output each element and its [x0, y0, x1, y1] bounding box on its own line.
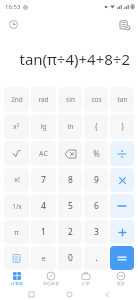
staticText: 2	[68, 226, 73, 238]
button[interactable]: 7	[31, 168, 56, 192]
staticText: 7	[41, 174, 46, 186]
button[interactable]: AC	[31, 141, 56, 166]
button[interactable]: .	[84, 246, 108, 270]
staticText: 计算器	[11, 281, 23, 286]
button[interactable]: rad	[31, 87, 56, 112]
button[interactable]: Home	[62, 288, 76, 300]
button[interactable]: π	[4, 220, 29, 244]
button[interactable]: History	[6, 17, 20, 31]
button[interactable]: 1/x	[4, 194, 29, 218]
button[interactable]: 4	[31, 194, 56, 218]
staticText: x2	[13, 122, 20, 132]
staticText: AC	[39, 149, 48, 159]
button[interactable]: e	[31, 246, 56, 270]
staticText: )	[121, 121, 124, 132]
button[interactable]: Recents	[24, 288, 38, 300]
button[interactable]: 3	[84, 220, 108, 244]
button[interactable]: 汇率	[68, 270, 103, 288]
staticText: x!	[14, 175, 20, 185]
button[interactable]: 9	[84, 168, 108, 192]
staticText: 2nd	[11, 95, 23, 104]
staticText: lg	[40, 122, 47, 132]
staticText: tan(π÷4)+4+8÷2	[19, 49, 130, 69]
button[interactable]: Divide	[110, 141, 134, 166]
staticText: tan	[117, 95, 128, 104]
button[interactable]: Backspace	[58, 141, 82, 166]
button[interactable]: 6	[84, 194, 108, 218]
staticText: 16:53	[5, 3, 21, 11]
staticText: e	[41, 253, 46, 263]
staticText: sin	[66, 95, 75, 104]
staticText: (	[95, 121, 98, 132]
staticText: 更多	[117, 281, 125, 286]
staticText: π	[14, 227, 19, 237]
staticText: cos	[91, 95, 102, 104]
button[interactable]: Clear history	[117, 17, 132, 32]
button[interactable]: %	[84, 141, 108, 166]
staticText: 6	[94, 200, 99, 212]
button[interactable]: cos	[84, 87, 108, 112]
button[interactable]: Minus	[110, 194, 134, 218]
button[interactable]: 5	[58, 194, 82, 218]
button[interactable]: lg	[31, 114, 56, 139]
button[interactable]: ln	[58, 114, 82, 139]
button[interactable]: 0	[58, 246, 82, 270]
button[interactable]: 2	[58, 220, 82, 244]
staticText: rad	[38, 95, 49, 104]
staticText: 9	[94, 174, 99, 186]
button[interactable]: Back	[100, 288, 114, 300]
button[interactable]: Equals	[110, 246, 134, 270]
button[interactable]: Copy result	[4, 246, 29, 270]
button[interactable]: 2nd	[4, 87, 29, 112]
button[interactable]: Multiply	[110, 168, 134, 192]
button[interactable]: 单位换算	[34, 270, 68, 288]
button[interactable]: (	[84, 114, 108, 139]
staticText: 3	[94, 226, 99, 238]
button[interactable]: x2	[4, 114, 29, 139]
staticText: %	[93, 148, 100, 159]
staticText: 1/x	[12, 202, 22, 211]
button[interactable]: tan	[110, 87, 134, 112]
staticText: ln	[67, 122, 74, 132]
button[interactable]: Plus	[110, 220, 134, 244]
button[interactable]: 8	[58, 168, 82, 192]
staticText: 单位换算	[43, 281, 59, 286]
button[interactable]: Square root	[4, 141, 29, 166]
staticText: 汇率	[82, 281, 90, 286]
staticText: 5	[68, 200, 73, 212]
staticText: 4	[41, 200, 46, 212]
staticText: 1	[41, 226, 46, 238]
button[interactable]: 1	[31, 220, 56, 244]
button[interactable]: )	[110, 114, 134, 139]
staticText: 8	[68, 174, 73, 186]
button[interactable]: x!	[4, 168, 29, 192]
staticText: .	[95, 252, 98, 264]
button[interactable]: sin	[58, 87, 82, 112]
staticText: 0	[68, 252, 73, 264]
button[interactable]: 计算器	[0, 270, 34, 288]
button[interactable]: 更多	[103, 270, 138, 288]
